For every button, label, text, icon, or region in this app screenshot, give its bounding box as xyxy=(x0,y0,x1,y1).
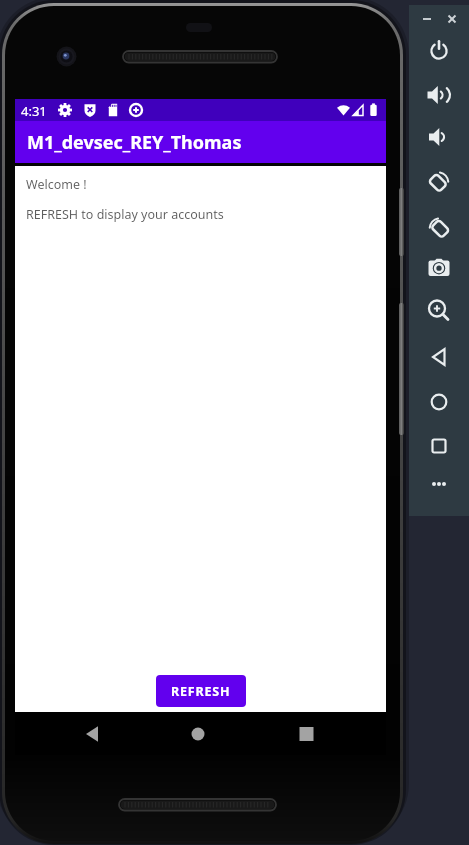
staticText: REFRESH to display your accounts xyxy=(26,206,224,223)
button[interactable] xyxy=(425,81,453,109)
staticText: Welcome ! xyxy=(26,176,87,193)
button[interactable] xyxy=(425,388,453,416)
button[interactable] xyxy=(425,343,453,371)
button[interactable] xyxy=(418,10,436,28)
button[interactable] xyxy=(425,470,453,498)
staticText: M1_devsec_REY_Thomas xyxy=(27,130,242,155)
staticText: 4:31 xyxy=(21,102,47,120)
button[interactable] xyxy=(425,167,453,195)
button[interactable] xyxy=(138,712,262,755)
button[interactable] xyxy=(425,297,453,325)
button[interactable]: REFRESH xyxy=(156,675,246,707)
button[interactable] xyxy=(443,10,461,28)
staticText: REFRESH xyxy=(171,683,231,700)
button[interactable] xyxy=(425,432,453,460)
button[interactable] xyxy=(262,712,386,755)
button[interactable] xyxy=(425,36,453,64)
button[interactable] xyxy=(425,213,453,241)
button[interactable] xyxy=(15,712,138,755)
button[interactable] xyxy=(425,123,453,151)
button[interactable] xyxy=(425,255,453,283)
